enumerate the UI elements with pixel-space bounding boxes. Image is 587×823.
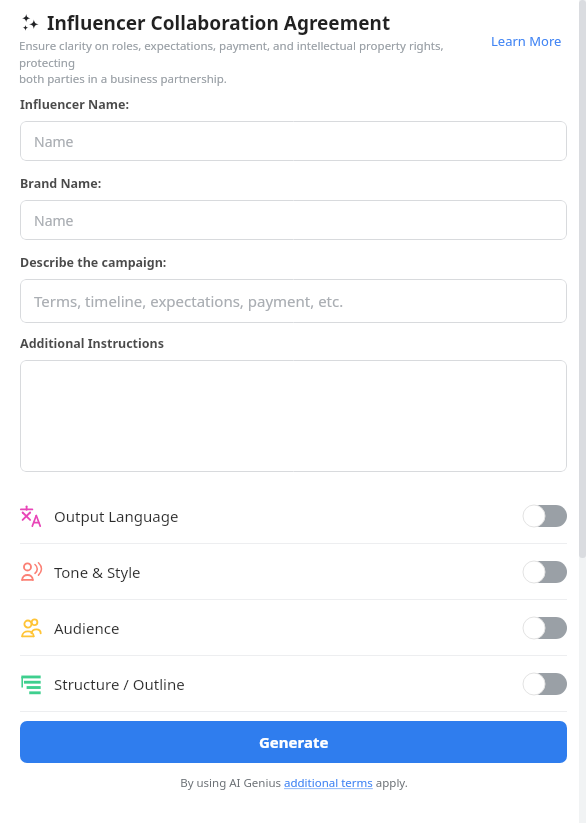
- button[interactable]: Learn More: [489, 30, 564, 52]
- button[interactable]: Toggle: [523, 505, 567, 527]
- staticText: Additional Instructions: [20, 335, 164, 352]
- staticText: Name: [34, 211, 74, 230]
- button[interactable]: Toggle: [523, 673, 567, 695]
- button[interactable]: Name: [20, 121, 567, 161]
- button[interactable]: Toggle: [523, 561, 567, 583]
- button[interactable]: Audience: [0, 600, 587, 655]
- staticText: Influencer Collaboration Agreement: [47, 10, 391, 36]
- staticText: Output Language: [54, 506, 179, 526]
- button[interactable]: [20, 360, 567, 472]
- button[interactable]: Terms, timeline, expectations, payment, …: [20, 279, 567, 323]
- button[interactable]: Output Language: [0, 488, 587, 543]
- button[interactable]: Generate: [20, 721, 567, 763]
- button[interactable]: Toggle: [523, 617, 567, 639]
- staticText: Brand Name:: [20, 175, 102, 192]
- staticText: Influencer Name:: [20, 96, 129, 113]
- staticText: By using AI Genius additional terms appl…: [180, 775, 408, 791]
- button[interactable]: Name: [20, 200, 567, 240]
- button[interactable]: Structure / Outline: [0, 656, 587, 711]
- staticText: Audience: [54, 618, 120, 638]
- staticText: Terms, timeline, expectations, payment, …: [34, 291, 344, 311]
- staticText: Ensure clarity on roles, expectations, p…: [19, 38, 489, 86]
- staticText: Tone & Style: [54, 562, 141, 582]
- staticText: Describe the campaign:: [20, 254, 167, 271]
- staticText: Name: [34, 132, 74, 151]
- staticText: Generate: [259, 732, 329, 752]
- staticText: Learn More: [491, 32, 562, 50]
- staticText: Structure / Outline: [54, 674, 185, 694]
- button[interactable]: Tone & Style: [0, 544, 587, 599]
- button[interactable]: By using AI Genius additional terms appl…: [0, 775, 587, 791]
